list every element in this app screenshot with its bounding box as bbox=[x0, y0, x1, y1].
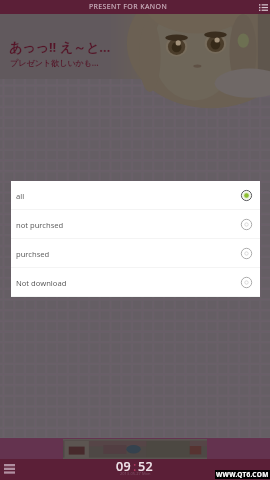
button[interactable]: all bbox=[11, 181, 260, 210]
staticText: あっっ!! え～と… bbox=[9, 38, 111, 56]
staticText: : bbox=[133, 458, 137, 475]
button[interactable]: List view bbox=[256, 0, 270, 14]
staticText: プレゼント欲しいかも… bbox=[10, 57, 99, 68]
staticText: 09 bbox=[116, 458, 132, 475]
staticText: Not download bbox=[16, 278, 240, 288]
staticText: WWW.QT6.COM bbox=[216, 470, 269, 479]
staticText: all bbox=[16, 191, 240, 201]
staticText: purchsed bbox=[16, 249, 240, 259]
button[interactable]: Not download bbox=[11, 268, 260, 297]
staticText: PRESENT FOR KANON bbox=[0, 2, 256, 12]
button[interactable]: not purchsed bbox=[11, 210, 260, 239]
button[interactable]: purchsed bbox=[11, 239, 260, 268]
staticText: not purchsed bbox=[16, 220, 240, 230]
staticText: 2013-05-27 Mon bbox=[120, 471, 151, 476]
button[interactable]: Menu bbox=[2, 462, 17, 477]
staticText: 52 bbox=[138, 458, 154, 475]
